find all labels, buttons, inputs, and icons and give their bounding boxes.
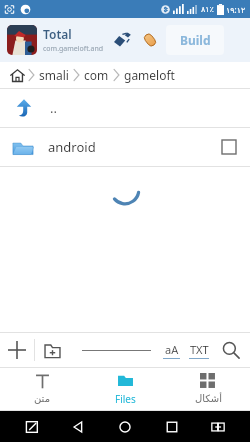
button[interactable] (73, 333, 159, 367)
staticText: ٨١٪ (201, 5, 214, 14)
button[interactable]: Back (63, 412, 93, 442)
staticText: com.gameloft.andr (43, 44, 105, 54)
staticText: Build (180, 32, 211, 48)
button[interactable]: Edit (137, 27, 163, 53)
staticText: gameloft (124, 67, 175, 83)
button[interactable]: Search (215, 333, 247, 367)
button[interactable]: New file (0, 333, 34, 367)
button[interactable]: Build (166, 25, 224, 55)
button[interactable]: Move (109, 27, 135, 53)
button[interactable]: gameloft (121, 67, 178, 83)
button[interactable]: Switch app (203, 412, 233, 442)
staticText: android (48, 138, 222, 156)
button[interactable]: App icon (7, 25, 37, 55)
button[interactable]: aA (161, 342, 182, 359)
staticText: TXT (190, 342, 209, 357)
staticText: Files (115, 392, 136, 406)
staticText: com (84, 67, 109, 83)
button[interactable]: Screenshot (17, 412, 47, 442)
staticText: Total Conqu (43, 26, 105, 42)
button[interactable]: أشكال (167, 368, 250, 410)
button[interactable]: com (81, 67, 112, 83)
staticText: .. (50, 99, 57, 117)
button[interactable]: Select android (222, 140, 236, 154)
staticText: smali (39, 67, 69, 83)
staticText: aA (165, 342, 179, 357)
button[interactable]: متن (0, 368, 84, 410)
button[interactable]: Home (7, 65, 27, 85)
button[interactable]: Recents (157, 412, 187, 442)
button[interactable]: android (0, 128, 250, 166)
staticText: متن (34, 393, 50, 405)
button[interactable]: TXT (187, 342, 211, 359)
staticText: أشكال (195, 393, 222, 405)
staticText: ١٩:١٢ (226, 4, 246, 15)
button[interactable]: Home (110, 412, 140, 442)
button[interactable]: New folder (35, 333, 69, 367)
button[interactable]: Files (84, 368, 167, 410)
button[interactable]: .. (0, 89, 250, 127)
button[interactable]: smali (36, 67, 72, 83)
